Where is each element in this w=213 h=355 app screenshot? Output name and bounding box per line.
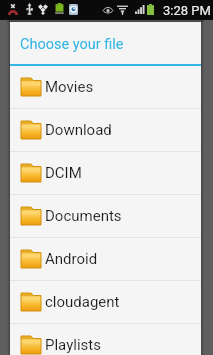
staticText: DCIM [45, 164, 82, 182]
button[interactable]: Download [10, 109, 201, 151]
button[interactable]: Documents [10, 195, 201, 237]
button[interactable]: DCIM [10, 152, 201, 194]
staticText: Download [45, 121, 112, 139]
button[interactable]: Movies [10, 66, 201, 108]
button[interactable]: cloudagent [10, 281, 201, 323]
staticText: Documents [45, 207, 122, 225]
staticText: Choose your file [20, 36, 124, 53]
staticText: Movies [45, 78, 94, 96]
staticText: cloudagent [45, 293, 120, 311]
staticText: 3:28 PM [163, 3, 211, 18]
staticText: Android [45, 250, 98, 268]
button[interactable]: Android [10, 238, 201, 280]
staticText: Playlists [45, 336, 101, 354]
button[interactable]: Playlists [10, 324, 201, 355]
